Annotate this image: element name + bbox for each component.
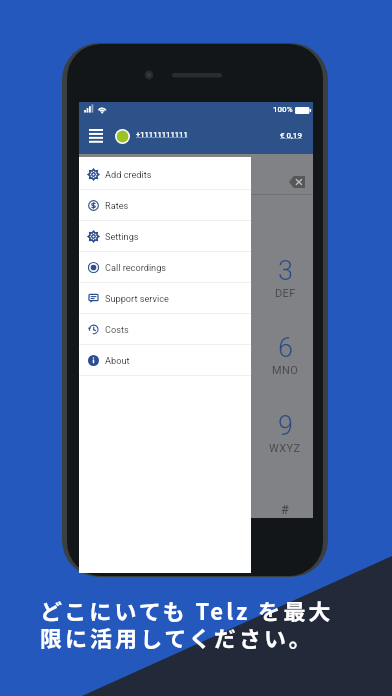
staticText: MNO: [272, 364, 299, 377]
staticText: GHI: [120, 364, 140, 377]
button[interactable]: 6: [246, 315, 324, 393]
button[interactable]: 3: [246, 238, 324, 316]
button[interactable]: Rates: [79, 190, 251, 220]
button[interactable]: About: [79, 345, 251, 375]
staticText: JKL: [198, 364, 219, 377]
staticText: Call recordings: [105, 262, 167, 273]
staticText: WXYZ: [269, 442, 301, 455]
staticText: #: [281, 502, 289, 517]
button[interactable]: Open navigation drawer: [83, 124, 108, 148]
button[interactable]: Support service: [79, 283, 251, 313]
button[interactable]: +11111111111: [136, 130, 188, 139]
button[interactable]: Call recordings: [79, 252, 251, 282]
staticText: Add credits: [105, 169, 152, 180]
staticText: どこにいても Telz を最大 限に活用してください。: [40, 594, 334, 654]
button[interactable]: 1: [91, 238, 169, 316]
staticText: Rates: [105, 200, 129, 211]
staticText: 3: [278, 255, 293, 287]
staticText: 1: [123, 261, 138, 293]
button[interactable]: 9: [246, 393, 324, 471]
button[interactable]: 2: [169, 238, 247, 316]
button[interactable]: #: [246, 470, 324, 548]
button[interactable]: 4: [91, 315, 169, 393]
staticText: About: [105, 355, 130, 366]
staticText: Support service: [105, 293, 169, 304]
button[interactable]: Add credits: [79, 159, 251, 189]
staticText: DEF: [275, 287, 296, 300]
staticText: Settings: [105, 231, 139, 242]
staticText: Costs: [105, 324, 129, 335]
button[interactable]: Backspace: [289, 176, 305, 188]
staticText: 4: [123, 332, 138, 364]
staticText: 100%: [273, 105, 293, 114]
button[interactable]: € 0,19: [280, 131, 302, 140]
staticText: 9: [278, 410, 293, 442]
button[interactable]: Settings: [79, 221, 251, 251]
staticText: 6: [278, 332, 293, 364]
button[interactable]: Costs: [79, 314, 251, 344]
